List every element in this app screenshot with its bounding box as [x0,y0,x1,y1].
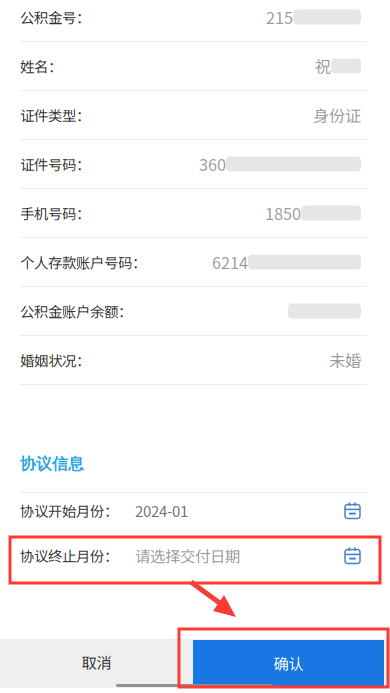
staticText: 2024-01 [135,500,188,521]
staticText: 证件号码： [20,154,90,174]
staticText: 公积金号： [20,7,90,27]
staticText: 协议开始月份： [20,500,118,521]
staticText: 婚姻状况： [20,350,90,370]
staticText: 1850 [265,201,301,225]
staticText: 手机号码： [20,203,90,223]
staticText: 6214 [212,250,248,274]
button[interactable]: 确认 [193,640,384,686]
staticText: 姓名： [20,56,62,76]
button[interactable]: 取消 [0,639,193,685]
staticText: 360 [199,152,226,176]
staticText: 协议信息 [20,454,84,474]
staticText: 215 [266,5,293,29]
staticText: 未婚 [329,348,361,372]
button[interactable]: 协议终止月份： [0,533,390,578]
staticText: 祝 [315,54,331,78]
staticText: 个人存款账户号码： [20,252,146,272]
staticText: 身份证 [313,103,361,127]
staticText: 公积金账户余额： [20,301,132,321]
staticText: 协议终止月份： [20,545,118,566]
staticText: 请选择交付日期 [135,544,240,567]
staticText: 证件类型： [20,105,90,125]
staticText: 确认 [273,652,303,674]
button[interactable]: 协议开始月份： [0,488,390,533]
staticText: 取消 [81,651,111,673]
